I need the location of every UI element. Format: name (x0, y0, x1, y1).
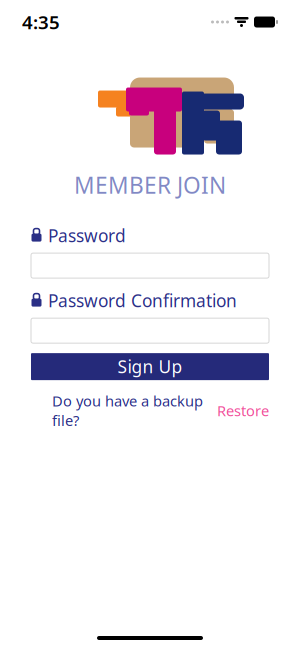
button[interactable]: Sign Up (31, 353, 269, 380)
staticText: Sign Up (117, 355, 182, 378)
staticText: Password (48, 224, 126, 247)
button[interactable]: Password Confirmation (31, 318, 269, 343)
staticText: Do you have a backup file? (52, 391, 203, 430)
staticText: Restore (217, 401, 269, 420)
staticText: 4:35 (22, 10, 60, 34)
staticText: Password Confirmation (48, 289, 237, 312)
button[interactable]: Restore (203, 401, 269, 420)
staticText: MEMBER JOIN (74, 170, 226, 200)
button[interactable]: Password (31, 253, 269, 278)
